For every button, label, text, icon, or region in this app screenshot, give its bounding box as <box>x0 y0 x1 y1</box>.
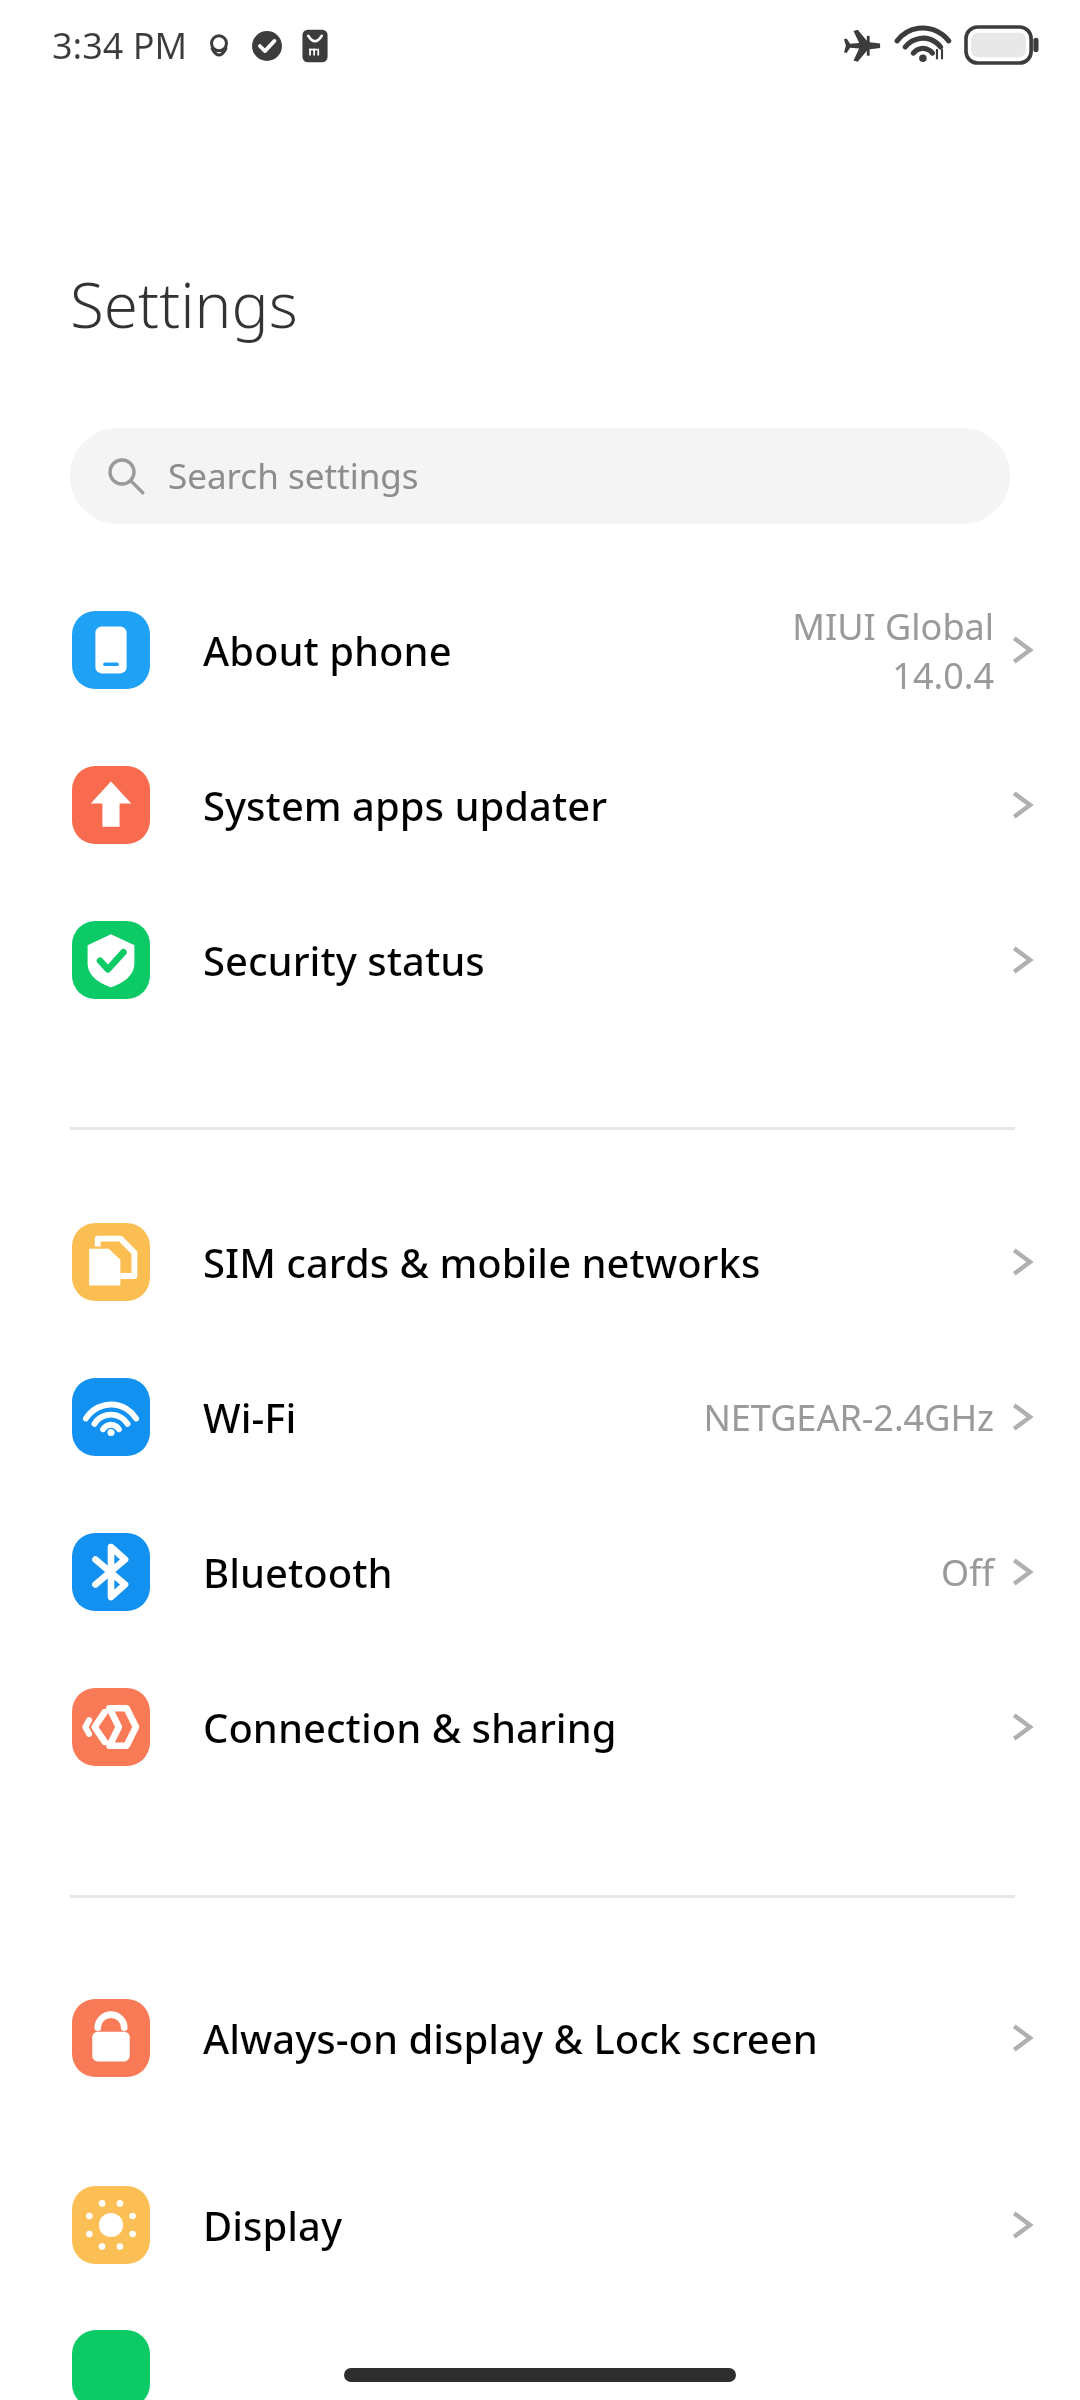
staticText: Off <box>941 1548 994 1597</box>
button[interactable]: Bluetooth <box>0 1502 1080 1642</box>
staticText: SIM cards & mobile networks <box>203 1235 994 1289</box>
staticText: 3:34 PM <box>52 21 188 70</box>
staticText: Bluetooth <box>203 1545 931 1599</box>
button[interactable]: System apps updater <box>0 735 1080 875</box>
staticText: Wi-Fi <box>203 1390 693 1444</box>
button[interactable]: Always-on display & Lock screen <box>0 1958 1080 2118</box>
staticText: About phone <box>203 623 744 677</box>
staticText: System apps updater <box>203 778 994 832</box>
button[interactable]: SIM cards & mobile networks <box>0 1192 1080 1332</box>
staticText: Connection & sharing <box>203 1700 994 1754</box>
button[interactable]: Sound & vibration <box>72 2330 150 2400</box>
staticText: NETGEAR-2.4GHz <box>703 1393 994 1442</box>
staticText: Display <box>203 2198 994 2252</box>
button[interactable]: About phone <box>0 580 1080 720</box>
staticText: MIUI Global 14.0.4 <box>754 602 994 699</box>
button[interactable]: Security status <box>0 890 1080 1030</box>
button[interactable]: Display <box>0 2155 1080 2295</box>
staticText: Always-on display & Lock screen <box>203 2011 994 2065</box>
button[interactable]: Wi-Fi <box>0 1347 1080 1487</box>
button[interactable]: Connection & sharing <box>0 1657 1080 1797</box>
staticText: Security status <box>203 933 994 987</box>
button[interactable]: Search settings <box>70 428 1010 524</box>
staticText: Search settings <box>168 452 419 500</box>
staticText: Settings <box>70 262 298 346</box>
